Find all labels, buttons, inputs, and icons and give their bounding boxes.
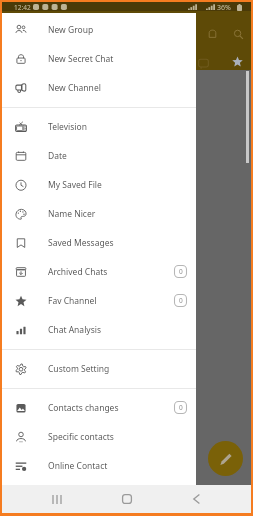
button[interactable]: Favourites tab — [224, 48, 251, 75]
staticText: Chat Analysis — [48, 324, 101, 336]
staticText: Specific contacts — [48, 431, 114, 443]
button[interactable]: Online Contact — [2, 451, 196, 480]
button[interactable]: Specific contacts — [2, 422, 196, 451]
staticText: 0 — [179, 267, 183, 276]
button[interactable]: Name Nicer — [2, 199, 196, 228]
staticText: 0 — [179, 403, 183, 412]
staticText: Custom Setting — [48, 363, 110, 375]
button[interactable]: Back — [181, 485, 211, 513]
staticText: Television — [48, 121, 87, 133]
button[interactable]: Fav Channel — [2, 286, 196, 315]
button[interactable]: New Channel — [2, 73, 196, 102]
button[interactable]: Secret chat — [198, 19, 227, 48]
staticText: My Saved File — [48, 179, 102, 191]
button[interactable]: Search — [224, 20, 251, 49]
button[interactable]: Chat Analysis — [2, 315, 196, 344]
button[interactable]: Recents — [42, 485, 72, 513]
staticText: New Secret Chat — [48, 53, 114, 65]
button[interactable]: New Group — [2, 15, 196, 44]
staticText: Archived Chats — [48, 266, 108, 278]
button[interactable]: Saved Messages — [2, 228, 196, 257]
staticText: New Channel — [48, 82, 101, 94]
button[interactable]: Date — [2, 141, 196, 170]
button[interactable]: Archived Chats — [2, 257, 196, 286]
staticText: Saved Messages — [48, 237, 114, 249]
staticText: Date — [48, 150, 67, 162]
button[interactable]: Home — [112, 485, 142, 513]
button[interactable]: New Secret Chat — [2, 44, 196, 73]
staticText: 36% — [217, 3, 231, 12]
button[interactable]: Chats tab — [194, 54, 212, 72]
staticText: 12:42 — [14, 3, 31, 12]
button[interactable]: Custom Setting — [2, 354, 196, 383]
staticText: Fav Channel — [48, 295, 97, 307]
staticText: New Group — [48, 24, 94, 36]
button[interactable]: Television — [2, 112, 196, 141]
staticText: Contacts changes — [48, 402, 119, 414]
staticText: Online Contact — [48, 460, 108, 472]
button[interactable]: New message — [208, 441, 243, 476]
staticText: 0 — [179, 296, 183, 305]
button[interactable]: Contacts changes — [2, 393, 196, 422]
staticText: Name Nicer — [48, 208, 96, 220]
button[interactable]: My Saved File — [2, 170, 196, 199]
